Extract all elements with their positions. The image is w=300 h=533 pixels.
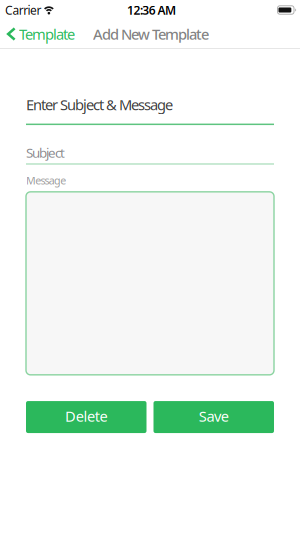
button[interactable]: Save (153, 401, 274, 433)
button[interactable]: Delete (26, 401, 146, 433)
staticText: Message (26, 173, 66, 188)
staticText: Enter Subject & Message (26, 95, 173, 114)
staticText: 12:36 AM (127, 2, 176, 18)
staticText: Add New Template (93, 24, 209, 44)
staticText: Subject (26, 144, 65, 161)
button[interactable]: Back (6, 24, 75, 44)
staticText: Template (19, 24, 75, 44)
staticText: Carrier (5, 2, 41, 18)
staticText: Delete (65, 406, 107, 426)
staticText: Save (199, 406, 229, 426)
